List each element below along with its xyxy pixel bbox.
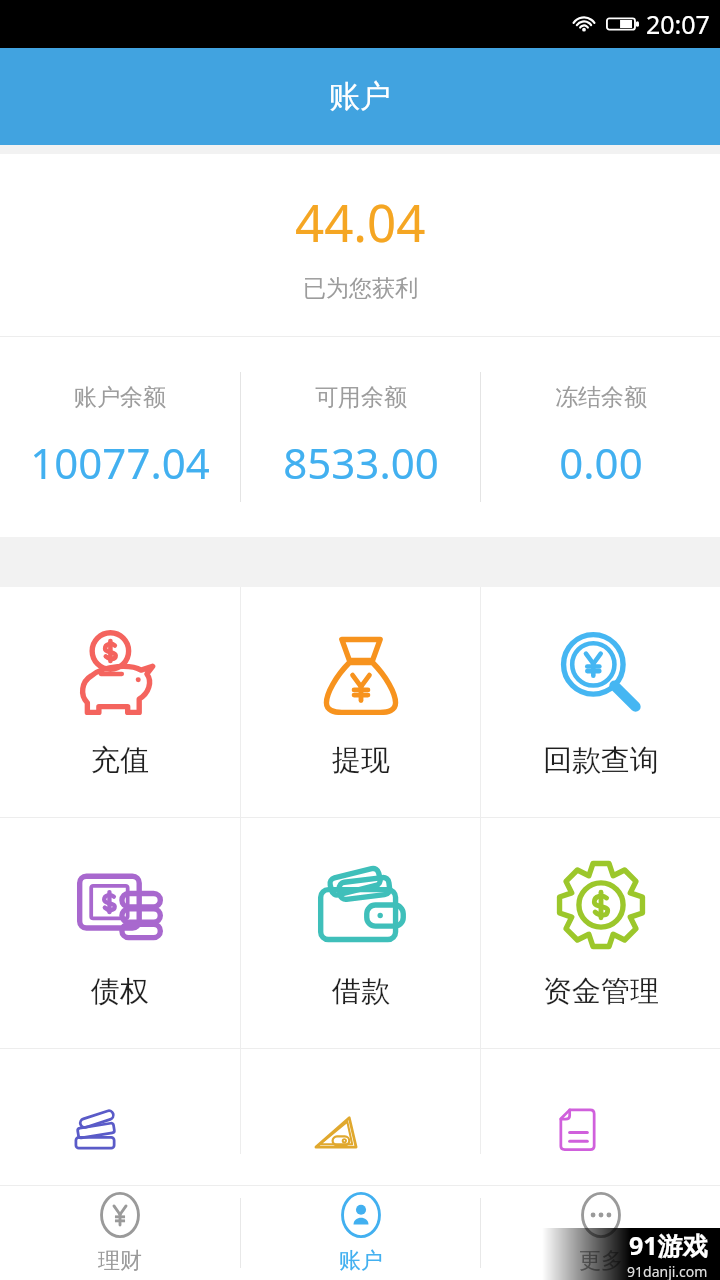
staticText: 已为您获利	[303, 274, 418, 303]
staticText: 91danji.com	[627, 1262, 708, 1280]
staticText: 账户余额	[74, 383, 166, 412]
staticText: 回款查询	[543, 742, 659, 779]
staticText: 0.00	[559, 434, 643, 491]
staticText: 91游戏	[629, 1228, 708, 1262]
staticText: 10077.04	[30, 434, 210, 491]
staticText: 借款	[332, 973, 390, 1010]
button[interactable]: 可用余额	[241, 337, 480, 537]
button[interactable]: 提现	[241, 587, 480, 817]
button[interactable]	[0, 1049, 240, 1154]
button[interactable]: 回款查询	[481, 587, 720, 817]
button[interactable]: 理财	[0, 1185, 240, 1280]
staticText: 资金管理	[543, 973, 659, 1010]
button[interactable]	[241, 1049, 480, 1154]
button[interactable]: 债权	[0, 818, 240, 1048]
staticText: 8533.00	[283, 434, 439, 491]
button[interactable]: 借款	[241, 818, 480, 1048]
staticText: 提现	[332, 742, 390, 779]
staticText: 账户	[329, 77, 391, 116]
staticText: 债权	[91, 973, 149, 1010]
staticText: 44.04	[295, 187, 426, 256]
button[interactable]: 账户余额	[0, 337, 240, 537]
button[interactable]: 账户	[241, 1185, 480, 1280]
button[interactable]	[481, 1049, 720, 1154]
button[interactable]: 更多	[481, 1185, 720, 1280]
staticText: 账户	[339, 1247, 383, 1275]
button[interactable]: 充值	[0, 587, 240, 817]
staticText: 20:07	[646, 7, 710, 41]
staticText: 理财	[98, 1247, 142, 1275]
staticText: 充值	[91, 742, 149, 779]
staticText: 更多	[579, 1247, 623, 1275]
button[interactable]: 冻结余额	[481, 337, 720, 537]
button[interactable]: 资金管理	[481, 818, 720, 1048]
staticText: 冻结余额	[555, 383, 647, 412]
staticText: 可用余额	[315, 383, 407, 412]
